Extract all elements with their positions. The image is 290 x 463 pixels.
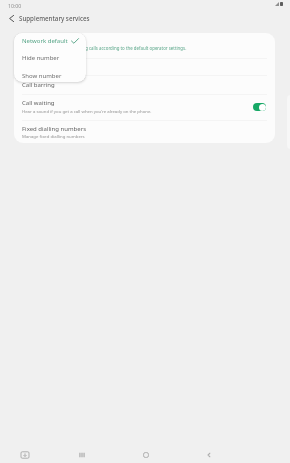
staticText: Call waiting: [22, 99, 55, 107]
button[interactable]: Fixed dialling numbers: [14, 120, 275, 143]
staticText: Show my caller ID: [22, 37, 73, 45]
button[interactable]: Back: [196, 444, 222, 463]
button[interactable]: Call barring: [14, 75, 275, 94]
staticText: Manage fixed dialling numbers: [22, 133, 85, 139]
staticText: Supplementary services: [19, 14, 90, 22]
button[interactable]: Show number: [14, 67, 86, 82]
staticText: Call barring: [22, 81, 55, 89]
staticText: Hear a sound if you get a call when you'…: [22, 108, 152, 114]
staticText: Hide number: [22, 54, 60, 62]
button[interactable]: Call waiting: [14, 94, 275, 120]
button[interactable]: Home: [133, 444, 159, 463]
staticText: Fixed dialling numbers: [22, 125, 87, 133]
staticText: Show number: [22, 72, 62, 80]
staticText: Show my caller ID when making calls acco…: [22, 45, 187, 51]
button[interactable]: Recent apps: [69, 444, 95, 463]
button[interactable]: Hide keyboard: [12, 444, 38, 463]
button[interactable]: Navigate up: [3, 10, 19, 26]
button[interactable]: Show my caller ID: [14, 33, 275, 58]
staticText: Network default: [22, 37, 68, 45]
button[interactable]: Hide number: [14, 49, 86, 66]
button[interactable]: Call forwarding: [14, 58, 275, 76]
staticText: 10:00: [8, 2, 22, 9]
button[interactable]: Network default: [14, 33, 86, 49]
